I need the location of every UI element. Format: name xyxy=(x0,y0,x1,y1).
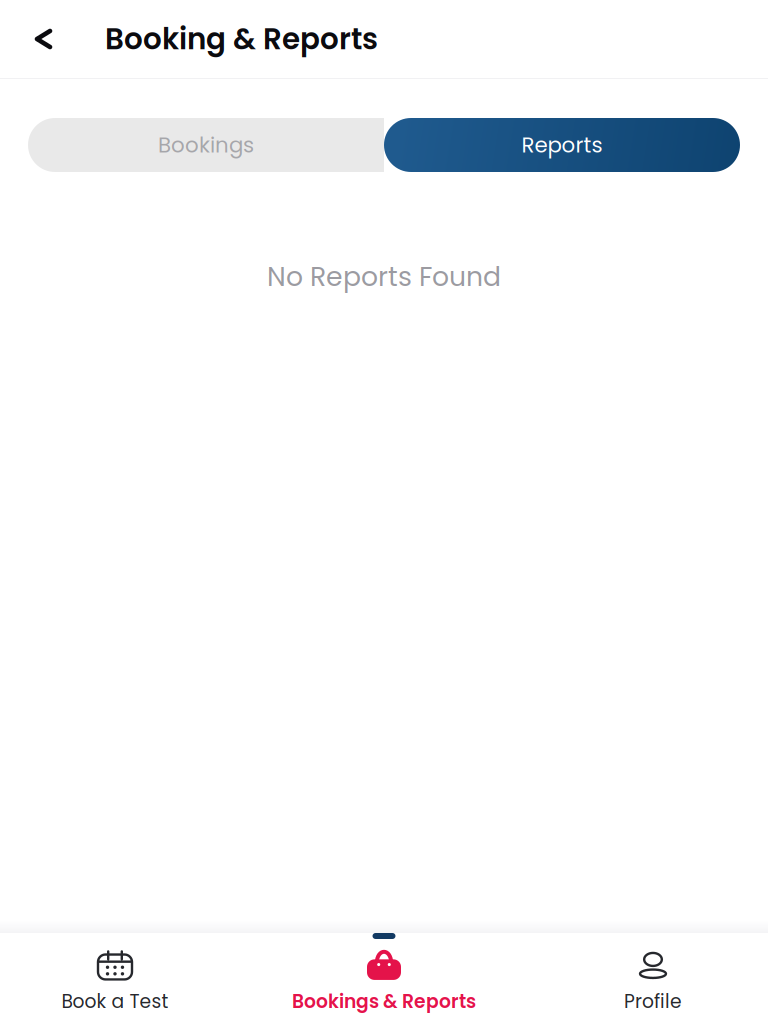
staticText: Booking & Reports xyxy=(105,18,378,60)
staticText: No Reports Found xyxy=(267,258,501,295)
button[interactable]: Bookings & Reports xyxy=(249,950,518,1014)
staticText: Book a Test xyxy=(61,988,168,1014)
staticText: Profile xyxy=(624,988,682,1014)
button[interactable]: Book a Test xyxy=(0,950,249,1014)
staticText: Bookings xyxy=(158,130,254,160)
staticText: Bookings & Reports xyxy=(292,988,476,1014)
button[interactable]: Bookings xyxy=(28,118,384,172)
button[interactable]: Reports xyxy=(384,118,740,172)
staticText: Reports xyxy=(521,130,602,160)
button[interactable]: Profile xyxy=(518,950,768,1014)
button[interactable]: Back xyxy=(21,15,66,63)
